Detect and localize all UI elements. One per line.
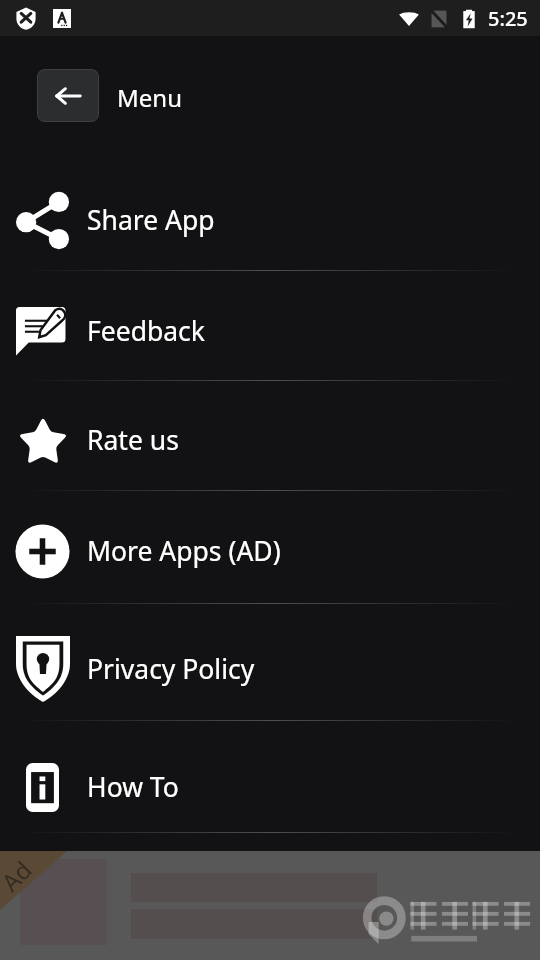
button[interactable]: Rate us [0, 381, 540, 491]
staticText: Ad [0, 853, 39, 898]
button[interactable]: Privacy Policy [0, 604, 540, 721]
button[interactable]: Feedback [0, 271, 540, 381]
button[interactable]: Back [37, 69, 99, 122]
staticText: 5:25 [488, 5, 528, 32]
staticText: How To [87, 769, 179, 805]
staticText: Menu [117, 81, 182, 114]
button[interactable]: Advertisement [0, 851, 540, 960]
staticText: Rate us [87, 422, 179, 458]
staticText: Feedback [87, 313, 205, 349]
button[interactable]: More Apps (AD) [0, 491, 540, 604]
button[interactable]: Share App [0, 160, 540, 271]
staticText: Privacy Policy [87, 651, 255, 687]
staticText: Share App [87, 202, 215, 238]
button[interactable]: How To [0, 721, 540, 833]
staticText: More Apps (AD) [87, 533, 281, 569]
